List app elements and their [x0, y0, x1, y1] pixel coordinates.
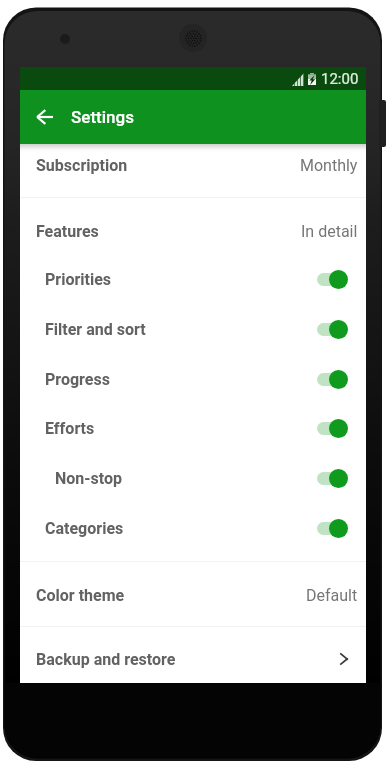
staticText: Priorities [45, 270, 112, 289]
staticText: 12:00 [321, 70, 359, 88]
button[interactable]: Backup and restore [20, 634, 366, 684]
button[interactable]: Features [20, 206, 366, 256]
staticText: Efforts [45, 419, 95, 438]
button[interactable]: Progress [20, 354, 366, 404]
staticText: Categories [45, 519, 124, 538]
staticText: Backup and restore [36, 650, 176, 669]
staticText: Monthly [300, 156, 358, 175]
staticText: Non-stop [55, 469, 122, 488]
button[interactable]: Color theme [20, 570, 366, 620]
staticText: Settings [71, 107, 134, 127]
button[interactable]: Filter and sort [20, 304, 366, 354]
button[interactable]: Subscription [20, 140, 366, 190]
staticText: Features [36, 222, 99, 241]
staticText: Filter and sort [45, 320, 146, 339]
staticText: In detail [301, 222, 358, 241]
button[interactable]: Non-stop [20, 453, 366, 503]
button[interactable]: Priorities [20, 254, 366, 304]
button[interactable]: Categories [20, 503, 366, 553]
button[interactable]: Efforts [20, 403, 366, 453]
staticText: Default [306, 586, 358, 605]
staticText: Progress [45, 370, 110, 389]
button[interactable]: Back [24, 97, 64, 137]
staticText: Color theme [36, 586, 125, 605]
staticText: Subscription [36, 156, 128, 175]
